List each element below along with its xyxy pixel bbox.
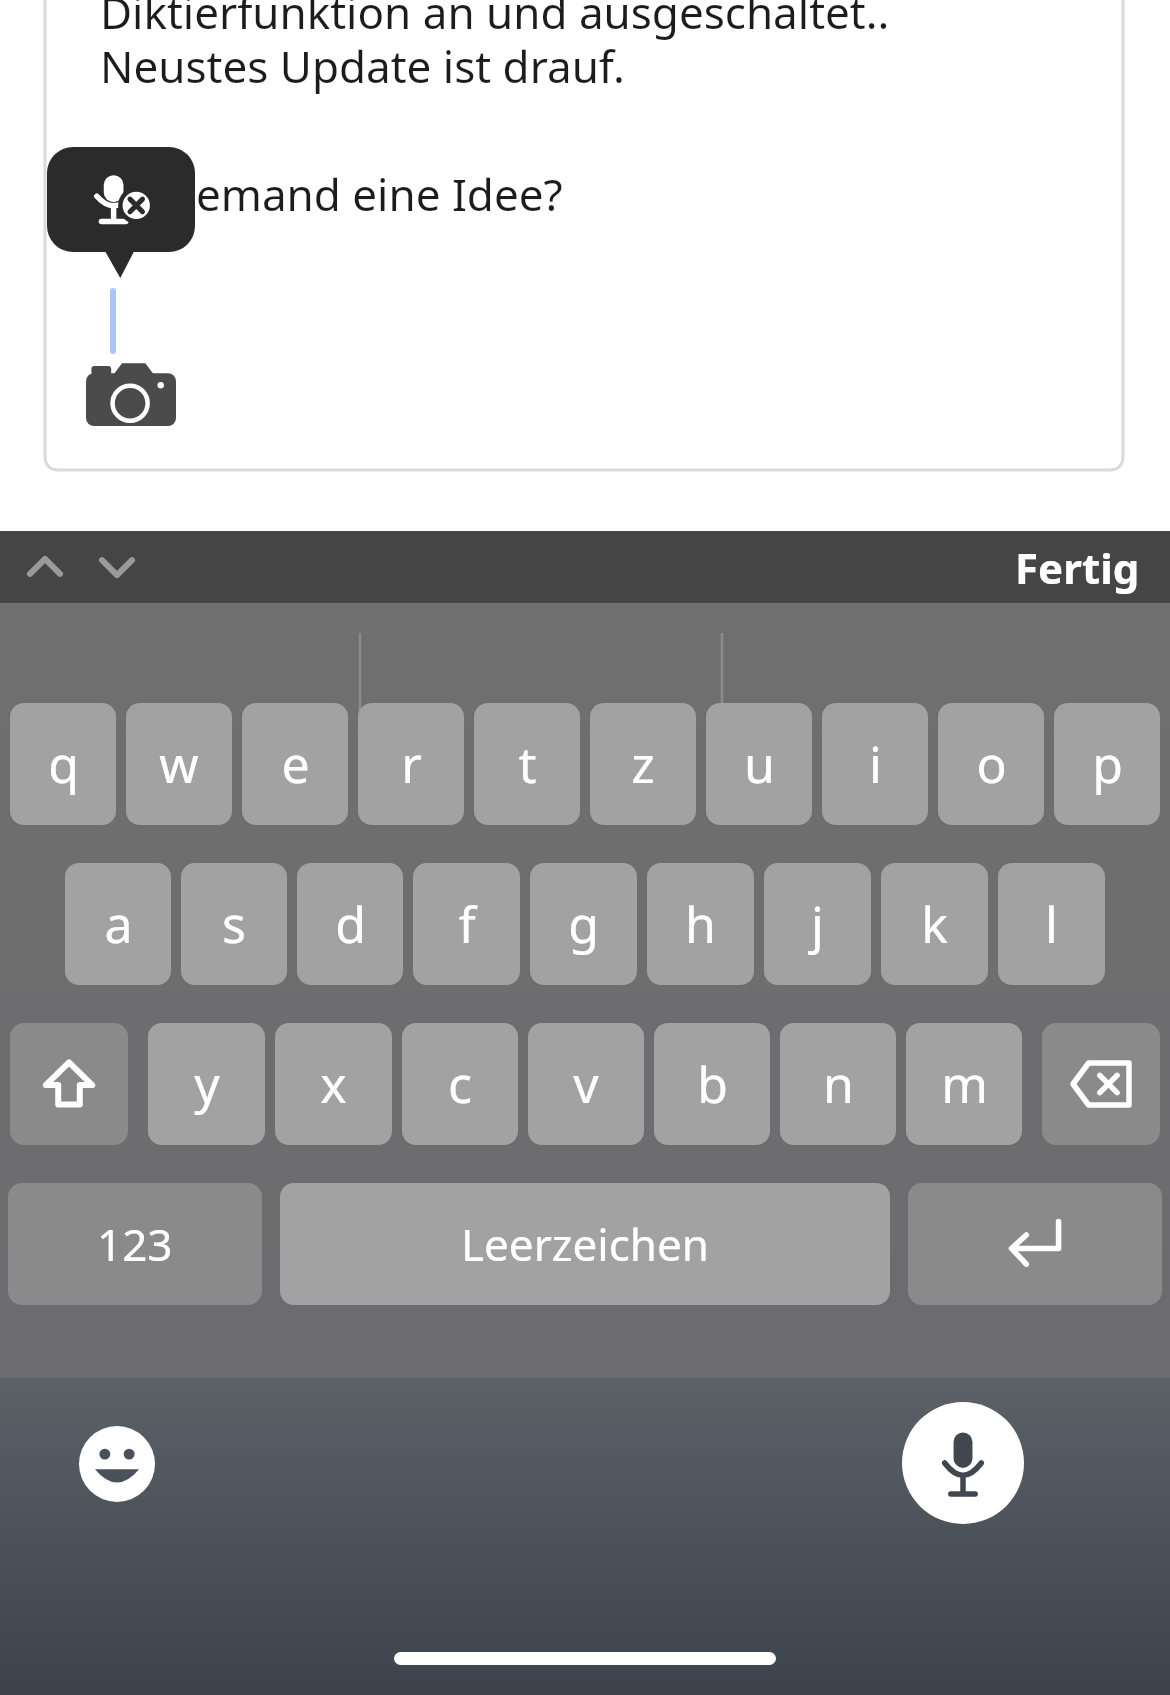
staticText: f — [458, 890, 476, 958]
button[interactable]: p — [1054, 703, 1160, 825]
button[interactable]: Umschalttaste — [10, 1023, 128, 1145]
staticText: b — [697, 1050, 728, 1118]
staticText: t — [518, 730, 537, 798]
button[interactable]: k — [881, 863, 988, 985]
staticText: Neustes Update ist drauf. — [100, 36, 625, 96]
button[interactable]: r — [358, 703, 464, 825]
staticText: a — [104, 890, 133, 958]
staticText: Diktierfunktion an und ausgeschaltet.. — [100, 0, 890, 42]
button[interactable]: z — [590, 703, 696, 825]
staticText: q — [48, 730, 79, 798]
button[interactable]: w — [126, 703, 232, 825]
button[interactable]: j — [764, 863, 871, 985]
button[interactable]: m — [906, 1023, 1022, 1145]
button[interactable]: l — [998, 863, 1105, 985]
staticText: s — [222, 890, 246, 958]
staticText: Hat jemand eine Idee? — [100, 164, 563, 224]
staticText: k — [921, 890, 948, 958]
button[interactable]: f — [413, 863, 520, 985]
staticText: w — [159, 730, 199, 798]
staticText: d — [335, 890, 366, 958]
button[interactable]: Emoji — [79, 1426, 155, 1502]
staticText: o — [976, 730, 1007, 798]
button[interactable]: Löschen — [1042, 1023, 1160, 1145]
staticText: e — [281, 730, 310, 798]
staticText: m — [941, 1050, 988, 1118]
staticText: p — [1092, 730, 1123, 798]
button[interactable]: t — [474, 703, 580, 825]
staticText: l — [1045, 890, 1058, 958]
staticText: h — [685, 890, 716, 958]
staticText: z — [631, 730, 655, 798]
button[interactable]: Eingabetaste — [908, 1183, 1162, 1305]
button[interactable]: b — [654, 1023, 770, 1145]
button[interactable]: Nächstes Feld — [86, 536, 148, 598]
button[interactable]: q — [10, 703, 116, 825]
button[interactable]: i — [822, 703, 928, 825]
staticText: x — [320, 1050, 347, 1118]
staticText: u — [744, 730, 775, 798]
button[interactable]: h — [647, 863, 754, 985]
button[interactable]: o — [938, 703, 1044, 825]
staticText: i — [869, 730, 882, 798]
staticText: Leerzeichen — [461, 1214, 710, 1274]
button[interactable]: y — [148, 1023, 265, 1145]
button[interactable]: c — [402, 1023, 518, 1145]
button[interactable]: n — [780, 1023, 896, 1145]
button[interactable]: Spracheingabe — [902, 1402, 1024, 1524]
button[interactable]: u — [706, 703, 812, 825]
button[interactable]: Vorheriges Feld — [14, 536, 76, 598]
staticText: r — [401, 730, 422, 798]
button[interactable]: d — [297, 863, 403, 985]
staticText: n — [823, 1050, 854, 1118]
button[interactable]: Fertig — [985, 531, 1170, 603]
button[interactable]: g — [530, 863, 637, 985]
button[interactable]: 123 — [8, 1183, 262, 1305]
staticText: v — [573, 1050, 599, 1118]
button[interactable]: a — [65, 863, 171, 985]
button[interactable]: s — [181, 863, 287, 985]
staticText: c — [448, 1050, 472, 1118]
button[interactable]: e — [242, 703, 348, 825]
staticText: y — [194, 1050, 220, 1118]
staticText: 123 — [97, 1214, 173, 1274]
staticText: Fertig — [1015, 539, 1140, 596]
button[interactable]: Kamera — [86, 366, 176, 426]
staticText: j — [811, 890, 824, 958]
button[interactable]: x — [275, 1023, 392, 1145]
staticText: g — [568, 890, 599, 958]
button[interactable]: v — [528, 1023, 644, 1145]
other: Diktierfunktion aus — [91, 173, 149, 227]
button[interactable]: Leerzeichen — [280, 1183, 890, 1305]
